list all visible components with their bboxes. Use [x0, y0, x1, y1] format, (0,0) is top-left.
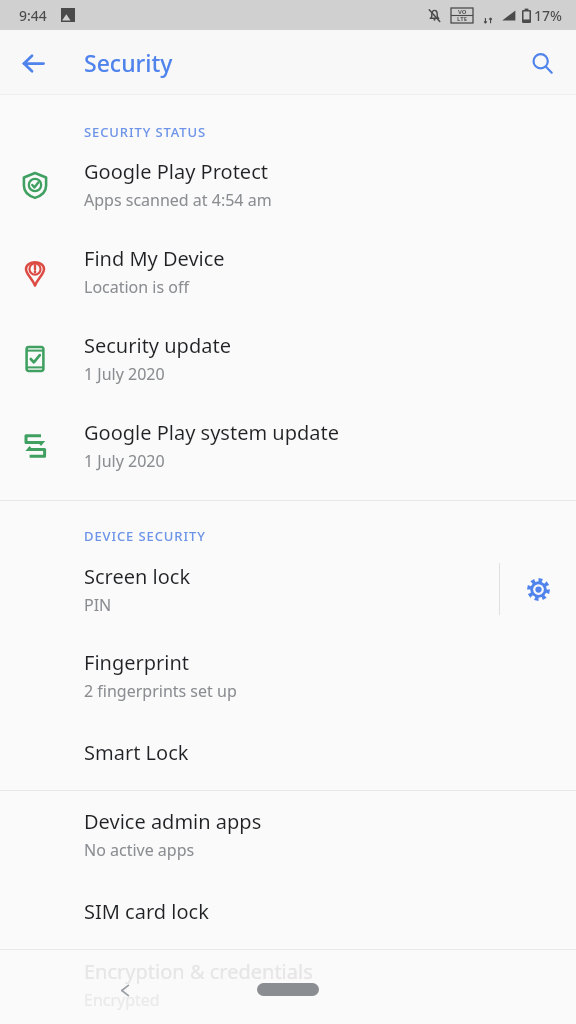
staticText: Device admin apps	[84, 808, 262, 835]
button[interactable]: Device admin apps	[0, 791, 576, 877]
staticText: No active apps	[84, 839, 195, 861]
button[interactable]: Google Play system update	[0, 402, 576, 489]
staticText: 17%	[534, 6, 562, 25]
staticText: Smart Lock	[84, 739, 189, 766]
staticText: Fingerprint	[84, 649, 190, 676]
button[interactable]: Google Play Protect	[0, 141, 576, 228]
staticText: Google Play system update	[84, 419, 340, 446]
button[interactable]: Fingerprint	[0, 633, 576, 718]
button[interactable]: Search	[518, 39, 566, 87]
button[interactable]: Smart Lock	[0, 718, 576, 786]
staticText: Find My Device	[84, 245, 225, 272]
button[interactable]: SIM card lock	[0, 877, 576, 945]
staticText: 9:44	[19, 6, 47, 25]
staticText: PIN	[84, 594, 112, 616]
staticText: 1 July 2020	[84, 363, 165, 385]
staticText: Security	[84, 47, 173, 78]
staticText: Screen lock	[84, 563, 191, 590]
staticText: DEVICE SECURITY	[84, 527, 206, 545]
staticText: Google Play Protect	[84, 158, 268, 185]
button[interactable]: Screen lock	[0, 545, 499, 633]
staticText: Security update	[84, 332, 231, 359]
staticText: Encryption & credentials	[84, 958, 313, 985]
staticText: Location is off	[84, 276, 189, 298]
staticText: Apps scanned at 4:54 am	[84, 189, 272, 211]
button[interactable]: Screen lock settings	[500, 545, 576, 633]
button[interactable]: Back	[9, 39, 57, 87]
button[interactable]: Find My Device	[0, 228, 576, 315]
staticText: Encrypted	[84, 989, 160, 1011]
staticText: SIM card lock	[84, 898, 209, 925]
staticText: VO	[458, 8, 467, 15]
staticText: 2 fingerprints set up	[84, 680, 237, 702]
staticText: 1 July 2020	[84, 450, 165, 472]
button[interactable]: Security update	[0, 315, 576, 402]
staticText: LTE	[457, 15, 468, 23]
button[interactable]: Home	[257, 983, 319, 996]
staticText: SECURITY STATUS	[84, 123, 207, 141]
button[interactable]: Back	[103, 968, 147, 1012]
